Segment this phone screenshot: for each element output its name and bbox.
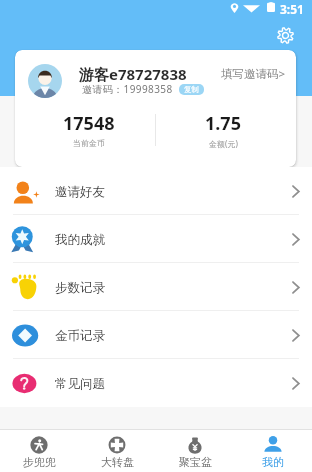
button[interactable]: Settings: [277, 27, 294, 44]
button[interactable]: 聚宝盆: [156, 430, 234, 472]
button[interactable]: 我的: [234, 430, 312, 472]
button[interactable]: 填写邀请码>: [221, 66, 286, 82]
staticText: 大转盘: [101, 455, 134, 469]
staticText: 步兜兜: [23, 455, 56, 469]
button[interactable]: 金币记录: [0, 311, 312, 359]
button[interactable]: 复制: [179, 84, 204, 95]
staticText: 我的成就: [55, 232, 105, 248]
staticText: 1.75: [205, 111, 241, 136]
button[interactable]: 常见问题: [0, 359, 312, 407]
staticText: 当前金币: [73, 138, 105, 148]
staticText: 步数记录: [55, 280, 105, 296]
button[interactable]: 步兜兜: [0, 430, 78, 472]
staticText: 聚宝盆: [179, 455, 212, 469]
staticText: 填写邀请码>: [221, 66, 286, 82]
button[interactable]: 步数记录: [0, 263, 312, 311]
button[interactable]: 我的成就: [0, 215, 312, 263]
staticText: 复制: [184, 85, 199, 94]
button[interactable]: 大转盘: [78, 430, 156, 472]
staticText: 金币记录: [55, 328, 105, 344]
staticText: 邀请码：19998358: [82, 82, 173, 96]
staticText: 我的: [262, 455, 284, 469]
staticText: 游客e78727838: [79, 64, 187, 84]
staticText: 常见问题: [55, 376, 105, 392]
button[interactable]: 邀请好友: [0, 167, 312, 215]
staticText: 金额(元): [209, 138, 238, 149]
staticText: 邀请好友: [55, 184, 105, 200]
staticText: 3:51: [280, 1, 304, 17]
staticText: 17548: [63, 111, 115, 136]
